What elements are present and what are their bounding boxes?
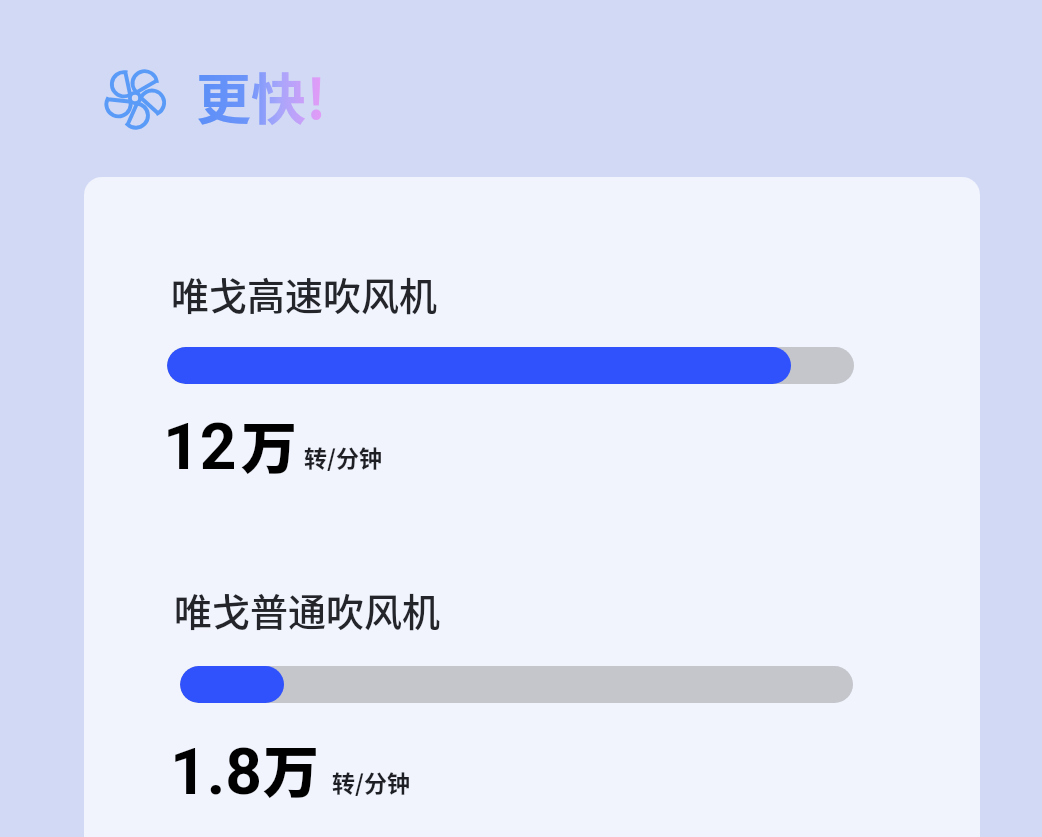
staticText: 万 — [263, 727, 319, 808]
staticText: 转/分钟 — [332, 765, 410, 798]
staticText: 转/分钟 — [304, 440, 382, 473]
button[interactable] — [180, 666, 853, 703]
button[interactable] — [167, 347, 854, 384]
staticText: 1.8 — [170, 735, 262, 810]
button[interactable]: 唯戈普通吹风机 — [174, 582, 441, 637]
button[interactable]: 唯戈高速吹风机 — [171, 266, 438, 321]
button[interactable]: Fan speed — [92, 50, 332, 150]
other: Fan speed — [103, 66, 167, 130]
staticText: 万 — [241, 403, 297, 484]
staticText: 更快! — [196, 55, 327, 135]
staticText: 12 — [163, 410, 237, 485]
